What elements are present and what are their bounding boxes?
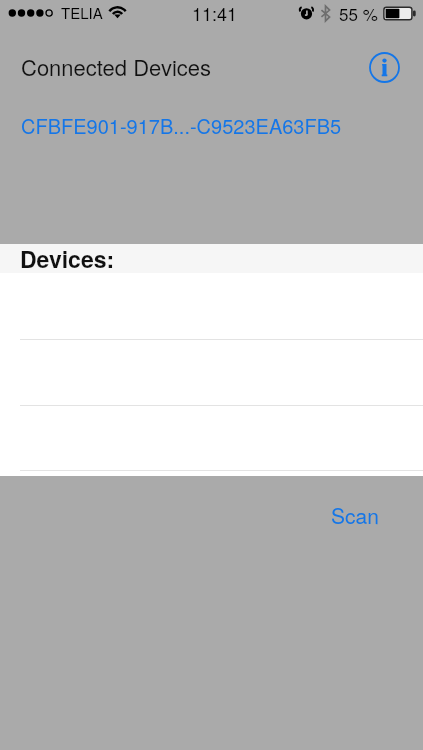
staticText: Connected Devices <box>21 51 212 83</box>
button[interactable]: Info <box>369 52 400 83</box>
staticText: CFBFE901-917B...-C9523EA63FB5 <box>21 111 342 140</box>
staticText: Devices: <box>20 242 115 271</box>
staticText: 11:41 <box>192 0 238 25</box>
button[interactable] <box>0 339 423 405</box>
staticText: 55 % <box>339 1 378 25</box>
button[interactable]: Scan <box>331 500 379 530</box>
button[interactable] <box>0 404 423 470</box>
staticText: Scan <box>331 500 379 530</box>
staticText: TELIA <box>61 2 103 23</box>
